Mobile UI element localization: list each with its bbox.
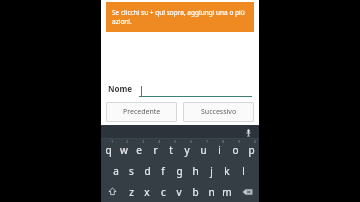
staticText: 4 <box>158 139 161 144</box>
button[interactable]: b <box>187 181 203 202</box>
button[interactable]: 6 <box>179 139 195 160</box>
staticText: l <box>242 164 245 178</box>
button[interactable]: v <box>171 181 187 202</box>
staticText: 8 <box>222 139 225 144</box>
button[interactable]: h <box>187 160 203 181</box>
button[interactable]: k <box>219 160 235 181</box>
button[interactable]: x <box>139 181 155 202</box>
button[interactable]: Shift <box>101 181 124 202</box>
button[interactable]: Precedente <box>106 102 177 122</box>
staticText: b <box>192 185 199 199</box>
button[interactable]: 3 <box>131 139 147 160</box>
staticText: e <box>136 143 142 157</box>
button[interactable]: Se clicchi su + qui sopra, aggiungi una … <box>106 2 254 32</box>
staticText: Nome <box>108 83 133 94</box>
button[interactable]: 8 <box>211 139 227 160</box>
button[interactable]: n <box>203 181 219 202</box>
staticText: o <box>232 143 239 157</box>
staticText: q <box>105 143 112 157</box>
staticText: 0 <box>254 139 257 144</box>
staticText: f <box>161 164 165 178</box>
staticText: 3 <box>142 139 145 144</box>
staticText: g <box>176 164 183 178</box>
staticText: w <box>120 143 128 157</box>
staticText: s <box>129 164 134 178</box>
staticText: c <box>161 185 166 199</box>
button[interactable]: Backspace <box>235 181 259 202</box>
staticText: 6 <box>190 139 193 144</box>
staticText: j <box>210 164 213 178</box>
staticText: a <box>113 164 119 178</box>
staticText: y <box>184 143 190 157</box>
button[interactable]: 0 <box>243 139 259 160</box>
button[interactable]: c <box>155 181 171 202</box>
button[interactable]: l <box>235 160 251 181</box>
button[interactable]: 4 <box>147 139 163 160</box>
button[interactable]: j <box>203 160 219 181</box>
staticText: n <box>208 185 215 199</box>
staticText: h <box>192 164 199 178</box>
button[interactable]: 7 <box>195 139 211 160</box>
button[interactable]: 1 <box>101 139 116 160</box>
staticText: 1 <box>111 139 114 144</box>
button[interactable]: 9 <box>227 139 243 160</box>
staticText: r <box>153 143 158 157</box>
staticText: k <box>224 164 230 178</box>
button[interactable]: d <box>139 160 155 181</box>
button[interactable]: f <box>155 160 171 181</box>
button[interactable]: 2 <box>116 139 131 160</box>
staticText: i <box>218 143 221 157</box>
button[interactable]: a <box>108 160 123 181</box>
staticText: z <box>129 185 134 199</box>
staticText: 2 <box>126 139 129 144</box>
staticText: Precedente <box>123 107 161 117</box>
button[interactable]: g <box>171 160 187 181</box>
staticText: 5 <box>174 139 177 144</box>
staticText: Se clicchi su + qui sopra, aggiungi una … <box>112 8 248 26</box>
button[interactable]: m <box>219 181 235 202</box>
staticText: m <box>222 185 232 199</box>
button[interactable]: 5 <box>163 139 179 160</box>
staticText: p <box>248 143 255 157</box>
button[interactable]: z <box>124 181 139 202</box>
staticText: Successivo <box>201 107 237 117</box>
staticText: v <box>176 185 182 199</box>
staticText: t <box>169 143 173 157</box>
staticText: 9 <box>238 139 241 144</box>
staticText: 7 <box>206 139 209 144</box>
button[interactable]: Nome <box>108 79 252 97</box>
button[interactable]: s <box>123 160 139 181</box>
staticText: x <box>144 185 150 199</box>
button[interactable]: Voice input <box>243 127 254 138</box>
staticText: d <box>144 164 151 178</box>
button[interactable]: Successivo <box>183 102 254 122</box>
staticText: u <box>200 143 207 157</box>
